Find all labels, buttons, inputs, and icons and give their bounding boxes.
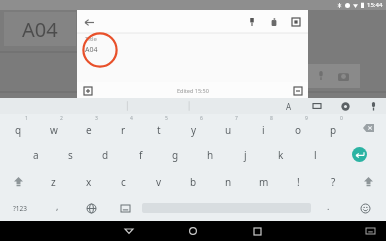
staticText: . bbox=[327, 200, 330, 212]
staticText: , bbox=[56, 200, 59, 212]
button[interactable]: . bbox=[311, 195, 345, 221]
staticText: u bbox=[225, 123, 232, 137]
staticText: 7 bbox=[235, 115, 238, 122]
staticText: A04 bbox=[85, 45, 98, 55]
button[interactable]: Shift bbox=[351, 168, 386, 195]
staticText: j bbox=[244, 148, 247, 162]
button[interactable]: b bbox=[176, 168, 211, 195]
staticText: c bbox=[121, 175, 126, 189]
staticText: 1 bbox=[25, 115, 28, 122]
button[interactable]: l bbox=[298, 141, 333, 168]
button[interactable]: d bbox=[88, 141, 123, 168]
staticText: 6 bbox=[200, 115, 203, 122]
button[interactable]: g bbox=[158, 141, 193, 168]
staticText: z bbox=[51, 175, 56, 189]
staticText: e bbox=[86, 123, 92, 137]
button[interactable]: , bbox=[40, 195, 74, 221]
staticText: 15:44 bbox=[367, 1, 383, 9]
staticText: x bbox=[86, 175, 92, 189]
button[interactable]: 1 bbox=[0, 114, 36, 141]
staticText: g bbox=[172, 148, 179, 162]
staticText: p bbox=[330, 123, 337, 137]
staticText: 8 bbox=[270, 115, 273, 122]
staticText: Edited 15:50 bbox=[177, 87, 209, 94]
button[interactable]: Pin bbox=[245, 15, 259, 29]
staticText: i bbox=[262, 123, 265, 137]
button[interactable]: 6 bbox=[176, 114, 211, 141]
button[interactable]: v bbox=[141, 168, 176, 195]
button[interactable]: Camera bbox=[332, 65, 354, 87]
button[interactable]: Settings bbox=[338, 99, 352, 113]
button[interactable]: Back bbox=[111, 221, 147, 241]
button[interactable]: Keyboard layout bbox=[108, 195, 142, 221]
button[interactable]: Home bbox=[175, 221, 211, 241]
button[interactable]: h bbox=[193, 141, 228, 168]
button[interactable]: x bbox=[71, 168, 106, 195]
staticText: v bbox=[156, 175, 162, 189]
staticText: 3 bbox=[95, 115, 98, 122]
button[interactable]: 5 bbox=[141, 114, 176, 141]
staticText: f bbox=[139, 148, 143, 162]
staticText: t bbox=[157, 123, 161, 137]
button[interactable]: c bbox=[106, 168, 141, 195]
staticText: n bbox=[225, 175, 232, 189]
staticText: w bbox=[50, 123, 58, 137]
button[interactable]: Back bbox=[81, 14, 97, 30]
button[interactable]: A04 bbox=[4, 12, 76, 46]
button[interactable]: j bbox=[228, 141, 263, 168]
button[interactable]: Reminder bbox=[267, 15, 281, 29]
button[interactable]: m bbox=[246, 168, 281, 195]
staticText: ?123 bbox=[13, 204, 27, 213]
button[interactable]: z bbox=[36, 168, 71, 195]
staticText: Title bbox=[85, 35, 97, 43]
button[interactable]: 2 bbox=[36, 114, 71, 141]
button[interactable]: 8 bbox=[246, 114, 281, 141]
button[interactable]: n bbox=[211, 168, 246, 195]
staticText: d bbox=[102, 148, 109, 162]
button[interactable]: ?123 bbox=[0, 195, 40, 221]
button[interactable]: Change language bbox=[74, 195, 108, 221]
button[interactable]: ? bbox=[316, 168, 351, 195]
button[interactable]: Enter bbox=[333, 141, 386, 168]
staticText: a bbox=[33, 148, 39, 162]
staticText: 9 bbox=[305, 115, 308, 122]
button[interactable]: Voice bbox=[310, 65, 332, 87]
button[interactable]: ! bbox=[281, 168, 316, 195]
staticText: ! bbox=[297, 175, 300, 189]
button[interactable]: More options bbox=[291, 84, 304, 97]
button[interactable]: Clipboard bbox=[310, 99, 324, 113]
button[interactable]: f bbox=[123, 141, 158, 168]
button[interactable]: Archive bbox=[289, 15, 303, 29]
staticText: l bbox=[314, 148, 317, 162]
staticText: b bbox=[190, 175, 197, 189]
button[interactable]: Emoji bbox=[345, 195, 386, 221]
staticText: ? bbox=[331, 175, 336, 189]
button[interactable]: 7 bbox=[211, 114, 246, 141]
button[interactable]: 4 bbox=[106, 114, 141, 141]
staticText: 4 bbox=[130, 115, 133, 122]
button[interactable]: Recents bbox=[239, 221, 275, 241]
button[interactable]: 9 bbox=[281, 114, 316, 141]
staticText: q bbox=[15, 123, 22, 137]
staticText: s bbox=[68, 148, 73, 162]
staticText: 2 bbox=[60, 115, 63, 122]
button[interactable]: 3 bbox=[71, 114, 106, 141]
button[interactable]: Hide keyboard bbox=[362, 223, 378, 239]
button[interactable]: k bbox=[263, 141, 298, 168]
button[interactable]: Voice input bbox=[366, 99, 380, 113]
button[interactable]: Draw bbox=[288, 65, 310, 87]
staticText: m bbox=[259, 175, 269, 189]
staticText: r bbox=[121, 123, 126, 137]
button[interactable]: s bbox=[53, 141, 88, 168]
button[interactable]: Text edit bbox=[282, 99, 296, 113]
button[interactable]: a bbox=[18, 141, 53, 168]
button[interactable]: Shift bbox=[0, 168, 36, 195]
staticText: y bbox=[191, 123, 197, 137]
staticText: A bbox=[286, 101, 292, 112]
button[interactable]: Backspace bbox=[351, 114, 386, 141]
staticText: 0 bbox=[340, 115, 343, 122]
button[interactable]: 0 bbox=[316, 114, 351, 141]
button[interactable]: Add bbox=[81, 84, 94, 97]
staticText: k bbox=[278, 148, 284, 162]
